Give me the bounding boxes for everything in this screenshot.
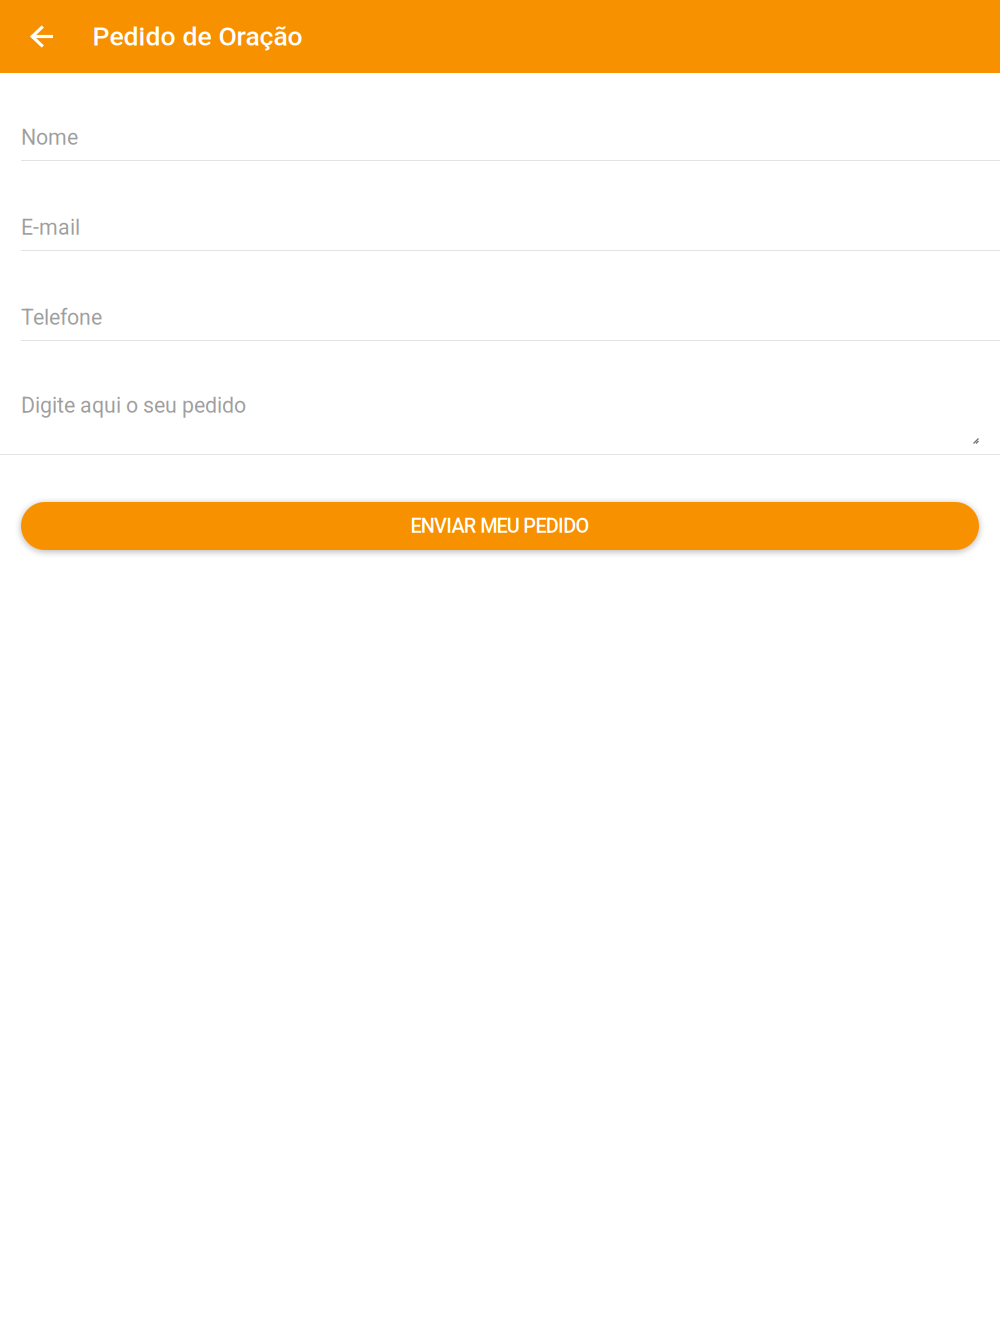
staticText: Pedido de Oração (92, 21, 302, 52)
button[interactable]: Back (0, 0, 72, 73)
button[interactable]: Telefone (0, 251, 1000, 341)
button[interactable]: ENVIAR MEU PEDIDO (21, 502, 979, 550)
staticText: Digite aqui o seu pedido (21, 393, 246, 418)
button[interactable]: Digite aqui o seu pedido (0, 341, 1000, 455)
button[interactable]: Nome (0, 73, 1000, 161)
button[interactable]: E-mail (0, 161, 1000, 251)
staticText: ENVIAR MEU PEDIDO (410, 514, 589, 538)
staticText: E-mail (21, 215, 80, 240)
staticText: Nome (21, 125, 78, 150)
staticText: Telefone (21, 305, 102, 330)
